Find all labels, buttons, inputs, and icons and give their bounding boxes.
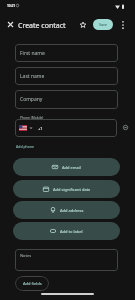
staticText: Add email — [62, 165, 81, 170]
button[interactable]: Save — [93, 19, 113, 30]
staticText: 10:21 — [7, 4, 16, 8]
staticText: Add fields — [23, 281, 42, 286]
staticText: Add phone — [16, 144, 35, 149]
staticText: Create contact — [18, 21, 66, 31]
button[interactable]: First name — [15, 44, 118, 62]
button[interactable]: Close — [3, 17, 18, 32]
button[interactable]: Company — [15, 90, 118, 109]
button[interactable]: Add address — [13, 201, 120, 219]
button[interactable]: Add to favorites — [75, 17, 90, 32]
staticText: Add significant date — [53, 187, 91, 192]
staticText: Last name — [20, 73, 45, 80]
button[interactable]: Add to label — [13, 222, 120, 240]
staticText: Save — [99, 22, 107, 27]
button[interactable]: More options — [115, 17, 130, 32]
staticText: Notes — [20, 253, 32, 258]
button[interactable]: Add email — [13, 158, 120, 176]
button[interactable]: Remove phone — [119, 121, 132, 134]
button[interactable]: +1 — [15, 119, 117, 137]
button[interactable]: Last name — [15, 67, 118, 85]
staticText: Company — [20, 96, 43, 103]
staticText: Phone (Mobile) — [20, 115, 44, 119]
staticText: Add address — [60, 208, 84, 213]
button[interactable]: Add fields — [15, 276, 49, 291]
button[interactable]: Add significant date — [13, 180, 120, 198]
staticText: Add to label — [60, 229, 83, 234]
staticText: First name — [20, 50, 45, 57]
button[interactable]: Notes — [15, 249, 118, 271]
staticText: +1 — [38, 126, 43, 131]
